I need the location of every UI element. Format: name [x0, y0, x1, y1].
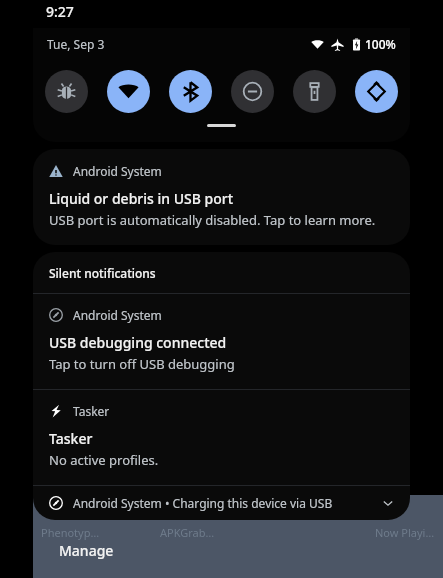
staticText: 100%	[365, 36, 396, 52]
staticText: Android System	[73, 307, 162, 323]
staticText: Now Playi…	[375, 525, 435, 540]
staticText: USB port is automatically disabled. Tap …	[49, 211, 376, 229]
other: Expand	[382, 497, 394, 509]
staticText: No active profiles.	[49, 451, 159, 469]
button[interactable]: Internet	[107, 70, 150, 113]
staticText: Tasker	[49, 429, 93, 448]
staticText: APKGrab…	[160, 525, 215, 540]
staticText: Android System • Charging this device vi…	[73, 495, 333, 511]
staticText: Android System	[73, 163, 162, 179]
button[interactable]: Silent notifications	[33, 252, 410, 293]
staticText: USB debugging connected	[49, 333, 227, 352]
button[interactable]: Bluetooth	[169, 70, 212, 113]
button[interactable]: Tasker	[33, 390, 410, 485]
button[interactable]: Flashlight	[293, 70, 336, 113]
button[interactable]: Auto rotate	[355, 70, 398, 113]
staticText: Tap to turn off USB debugging	[49, 355, 235, 373]
staticText: Liquid or debris in USB port	[49, 189, 234, 208]
staticText: 9:27	[46, 2, 74, 21]
staticText: Tasker	[73, 403, 110, 419]
button[interactable]: Do Not Disturb	[231, 70, 274, 113]
staticText: Tue, Sep 3	[47, 36, 105, 52]
staticText: Manage	[59, 541, 114, 560]
staticText: Silent notifications	[49, 265, 156, 281]
button[interactable]: Debug	[45, 70, 88, 113]
button[interactable]: Manage	[55, 539, 118, 562]
button[interactable]: Android System • Charging this device vi…	[33, 486, 410, 520]
button[interactable]: Android System	[33, 149, 410, 245]
staticText: Phenotyp…	[41, 525, 100, 540]
button[interactable]: Android System	[33, 294, 410, 389]
